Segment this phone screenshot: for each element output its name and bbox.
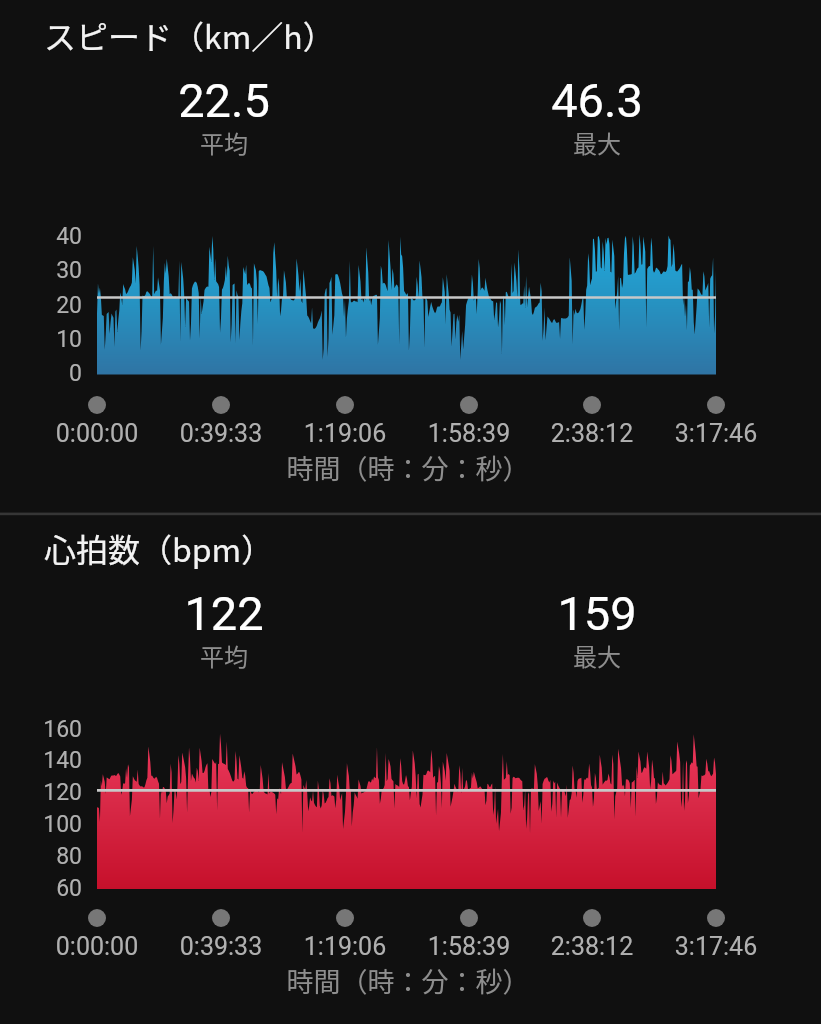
staticText: 3:17:46 — [641, 419, 791, 448]
staticText: 10 — [22, 326, 82, 353]
staticText: 30 — [22, 257, 82, 284]
staticText: 0:39:33 — [146, 932, 296, 961]
staticText: 最大 — [527, 638, 667, 673]
staticText: 1:58:39 — [394, 932, 544, 961]
staticText: 160 — [22, 716, 82, 743]
button[interactable]: 159 — [527, 586, 667, 641]
staticText: 1:58:39 — [394, 419, 544, 448]
staticText: 2:38:12 — [517, 419, 667, 448]
staticText: 0:00:00 — [22, 932, 172, 961]
staticText: 2:38:12 — [517, 932, 667, 961]
staticText: 0:39:33 — [146, 419, 296, 448]
staticText: 100 — [22, 811, 82, 838]
staticText: 140 — [22, 747, 82, 774]
button[interactable]: スピード（km／h） — [44, 12, 335, 58]
button[interactable]: 46.3 — [527, 73, 667, 128]
staticText: 60 — [22, 875, 82, 902]
staticText: 120 — [22, 779, 82, 806]
staticText: 平均 — [154, 638, 294, 673]
staticText: 3:17:46 — [641, 932, 791, 961]
staticText: 時間（時：分：秒） — [198, 448, 618, 487]
button[interactable]: 22.5 — [154, 73, 294, 128]
staticText: 20 — [22, 292, 82, 319]
staticText: 1:19:06 — [270, 932, 420, 961]
staticText: 40 — [22, 223, 82, 250]
staticText: 0:00:00 — [22, 419, 172, 448]
staticText: 時間（時：分：秒） — [198, 961, 618, 1000]
staticText: 80 — [22, 843, 82, 870]
button[interactable]: 心拍数（bpm） — [44, 525, 274, 571]
button[interactable]: 122 — [154, 586, 294, 641]
staticText: 0 — [22, 360, 82, 387]
button[interactable]: Heart rate chart — [20, 715, 720, 905]
staticText: 最大 — [527, 125, 667, 160]
staticText: 平均 — [154, 125, 294, 160]
button[interactable]: Speed chart — [20, 215, 720, 395]
staticText: 1:19:06 — [270, 419, 420, 448]
